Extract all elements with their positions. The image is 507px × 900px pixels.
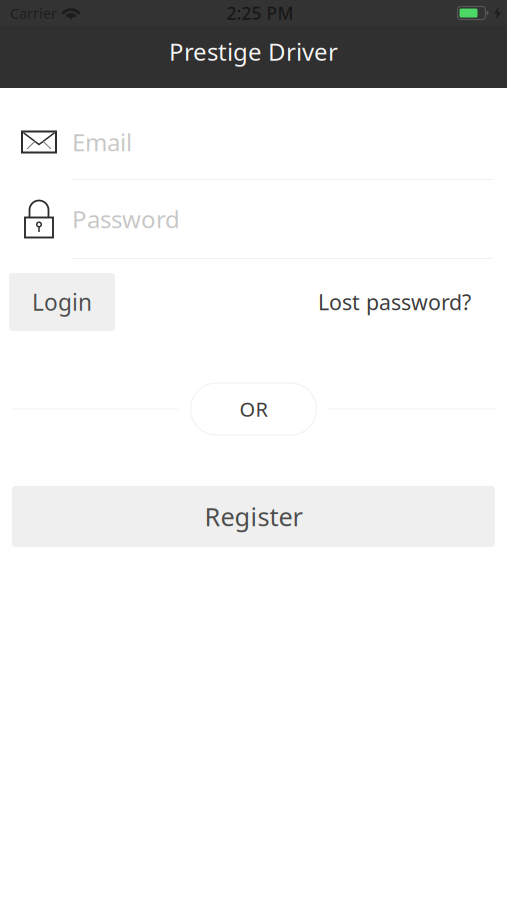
staticText: 2:25 PM xyxy=(226,1,293,24)
button[interactable]: Register xyxy=(12,486,495,547)
staticText: Register xyxy=(204,500,302,533)
staticText: Lost password? xyxy=(318,288,471,316)
staticText: Prestige Driver xyxy=(169,36,338,67)
staticText: Email xyxy=(72,126,132,158)
staticText: OR xyxy=(239,396,267,422)
button[interactable]: Lost password? xyxy=(318,273,471,331)
button[interactable]: Login xyxy=(9,273,115,331)
staticText: Login xyxy=(32,287,92,317)
staticText: Carrier xyxy=(10,3,57,23)
staticText: Password xyxy=(72,203,180,235)
